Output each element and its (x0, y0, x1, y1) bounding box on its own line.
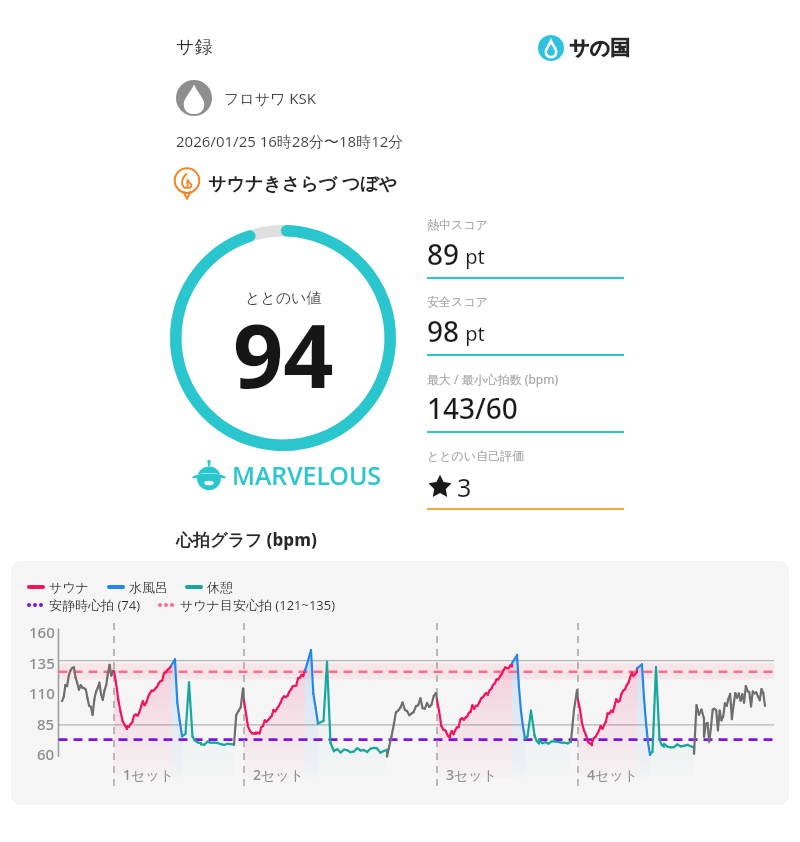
staticText: 110 (29, 683, 55, 703)
button[interactable]: フロサワ KSK (176, 80, 317, 116)
button[interactable]: MARVELOUS (192, 458, 382, 492)
staticText: 水風呂 (129, 579, 168, 595)
staticText: 安全スコア (427, 294, 488, 309)
staticText: 143/60 (427, 389, 518, 427)
staticText: サウナ目安心拍 (121~135) (180, 596, 336, 614)
button[interactable]: 熱中スコア (427, 209, 624, 286)
staticText: MARVELOUS (232, 458, 382, 492)
staticText: 3セット (446, 765, 497, 784)
staticText: 2026/01/25 16時28分〜18時12分 (176, 131, 404, 151)
staticText: 4セット (587, 765, 638, 784)
staticText: 1セット (123, 765, 174, 784)
staticText: pt (460, 243, 485, 270)
staticText: ととのい値 (245, 289, 322, 308)
staticText: 熱中スコア (427, 217, 488, 232)
staticText: 94 (233, 294, 334, 414)
staticText: サウナきさらづ つぼや (208, 171, 397, 196)
staticText: 60 (37, 744, 55, 764)
staticText: 135 (29, 653, 55, 673)
staticText: 98 (427, 312, 460, 350)
staticText: 160 (29, 622, 55, 642)
staticText: サウナ (49, 579, 89, 595)
staticText: 2セット (253, 765, 304, 784)
staticText: 3 (457, 470, 472, 504)
staticText: 最大 / 最小心拍数 (bpm) (427, 371, 559, 387)
staticText: サ録 (176, 36, 213, 59)
button[interactable]: サの国 (538, 35, 630, 61)
staticText: pt (460, 320, 485, 347)
staticText: サの国 (569, 36, 630, 61)
button[interactable]: サウナきさらづ つぼや (172, 168, 397, 198)
staticText: ととのい自己評価 (427, 448, 525, 463)
button[interactable]: ととのい自己評価 (427, 440, 624, 517)
button[interactable]: 最大 / 最小心拍数 (bpm) (427, 363, 624, 440)
staticText: 89 (427, 235, 460, 273)
button[interactable]: ととのい値 94 (170, 225, 396, 451)
staticText: 85 (37, 714, 55, 734)
staticText: フロサワ KSK (224, 88, 317, 108)
staticText: 安静時心拍 (74) (49, 596, 141, 614)
button[interactable]: 安全スコア (427, 286, 624, 363)
staticText: 心拍グラフ (bpm) (176, 528, 317, 551)
staticText: 休憩 (207, 579, 233, 595)
